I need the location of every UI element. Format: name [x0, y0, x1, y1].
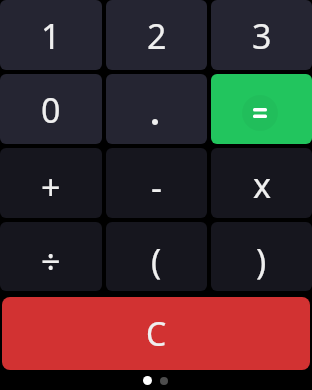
button[interactable]: ): [211, 222, 312, 291]
button[interactable]: C: [2, 297, 310, 370]
button[interactable]: 3: [211, 0, 312, 70]
staticText: 0: [41, 87, 61, 133]
button[interactable]: -: [106, 148, 207, 218]
staticText: 2: [147, 13, 167, 59]
button[interactable]: [106, 74, 207, 144]
staticText: 1: [41, 13, 61, 59]
staticText: +: [41, 164, 61, 210]
staticText: ÷: [41, 238, 61, 284]
staticText: x: [253, 162, 271, 208]
button[interactable]: ÷: [0, 222, 102, 291]
button[interactable]: (: [106, 222, 207, 291]
button[interactable]: [211, 74, 312, 144]
staticText: ): [256, 238, 267, 284]
staticText: -: [151, 164, 162, 210]
staticText: (: [151, 238, 162, 284]
button[interactable]: 0: [0, 74, 102, 144]
staticText: 3: [252, 13, 272, 59]
button[interactable]: +: [0, 148, 102, 218]
button[interactable]: 2: [106, 0, 207, 70]
staticText: C: [146, 312, 167, 356]
button[interactable]: 1: [0, 0, 102, 70]
button[interactable]: x: [211, 148, 312, 218]
